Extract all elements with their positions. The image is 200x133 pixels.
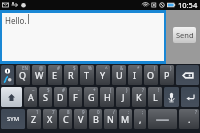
staticText: SYM [7, 115, 20, 123]
button[interactable]: Send [173, 27, 196, 43]
staticText: L [153, 91, 158, 103]
staticText: : [128, 109, 130, 115]
button[interactable]: I [128, 65, 142, 85]
button[interactable]: Enter [181, 87, 199, 107]
staticText: ~ [32, 87, 35, 93]
button[interactable]: K [132, 87, 146, 107]
staticText: Q [19, 69, 27, 81]
button[interactable]: Space [148, 109, 177, 129]
button[interactable]: G [84, 87, 98, 107]
button[interactable]: T [80, 65, 94, 85]
staticText: EN [22, 65, 28, 71]
staticText: # [57, 65, 60, 71]
staticText: * [137, 65, 140, 71]
button[interactable]: Backspace [176, 65, 199, 85]
button[interactable]: F [69, 87, 82, 107]
button[interactable]: S [39, 87, 52, 107]
staticText: ? [142, 87, 144, 93]
staticText: I [133, 69, 137, 81]
button[interactable]: Hello. [2, 13, 164, 61]
staticText: D [57, 91, 64, 103]
staticText: $ [73, 65, 76, 71]
button[interactable]: N [104, 109, 117, 129]
button[interactable]: Y [96, 65, 110, 85]
staticText: + [93, 87, 96, 93]
button[interactable]: V [74, 109, 87, 129]
button[interactable]: Shift [1, 87, 22, 107]
staticText: Send [176, 30, 194, 40]
staticText: ( [110, 87, 112, 93]
staticText: C [63, 113, 69, 125]
staticText: R [68, 69, 74, 81]
button[interactable]: , [134, 109, 146, 129]
staticText: K [136, 91, 142, 103]
button[interactable]: L [148, 87, 162, 107]
button[interactable]: A [24, 87, 37, 107]
button[interactable]: SYM [1, 109, 25, 129]
button[interactable]: U [112, 65, 126, 85]
staticText: $ [47, 87, 50, 93]
button[interactable]: M [119, 109, 132, 129]
staticText: N [107, 113, 114, 125]
button[interactable]: Z [27, 109, 41, 129]
staticText: M [121, 113, 130, 125]
staticText: ) [126, 87, 128, 93]
staticText: A [28, 91, 34, 103]
staticText: . [188, 113, 191, 125]
staticText: 7 [52, 109, 55, 115]
staticText: S [43, 91, 48, 103]
button[interactable]: W [32, 65, 46, 85]
staticText: ! [158, 87, 160, 93]
button[interactable]: O [144, 65, 158, 85]
staticText: U [116, 69, 123, 81]
button[interactable]: J [116, 87, 130, 107]
staticText: / [113, 109, 115, 115]
staticText: J [122, 91, 125, 103]
staticText: # [62, 87, 65, 93]
staticText: & [120, 65, 124, 71]
staticText: @ [39, 65, 44, 71]
staticText: H [104, 91, 111, 103]
staticText: T [84, 69, 90, 81]
staticText: 0 [97, 109, 100, 115]
button[interactable]: P [160, 65, 174, 85]
staticText: O [147, 69, 155, 81]
button[interactable]: E [48, 65, 62, 85]
staticText: ; [142, 109, 144, 115]
staticText: ( [154, 65, 156, 71]
staticText: E [52, 69, 58, 81]
staticText: X [47, 113, 53, 125]
staticText: ^ [105, 65, 108, 71]
button[interactable]: . [179, 109, 199, 129]
button[interactable]: X [43, 109, 57, 129]
button[interactable]: D [54, 87, 67, 107]
staticText: F [73, 91, 78, 103]
staticText: Hello. [5, 15, 27, 26]
staticText: B [93, 113, 99, 125]
staticText: ? [195, 109, 197, 115]
staticText: ) [170, 65, 172, 71]
staticText: V [78, 113, 84, 125]
staticText: - [78, 87, 80, 93]
button[interactable]: B [89, 109, 102, 129]
staticText: Z [31, 113, 37, 125]
staticText: 1 [36, 109, 39, 115]
button[interactable]: Input method [1, 65, 14, 85]
staticText: G [88, 91, 95, 103]
staticText: 10:54 [178, 0, 198, 10]
button[interactable]: Q [16, 65, 30, 85]
staticText: 8 [67, 109, 70, 115]
button[interactable]: Voice input [164, 87, 179, 107]
button[interactable]: H [100, 87, 114, 107]
button[interactable]: C [59, 109, 72, 129]
staticText: 9 [82, 109, 85, 115]
staticText: P [164, 69, 170, 81]
staticText: Y [100, 69, 106, 81]
button[interactable]: R [64, 65, 78, 85]
staticText: % [88, 65, 92, 71]
staticText: W [35, 69, 44, 81]
staticText: , [139, 113, 142, 125]
